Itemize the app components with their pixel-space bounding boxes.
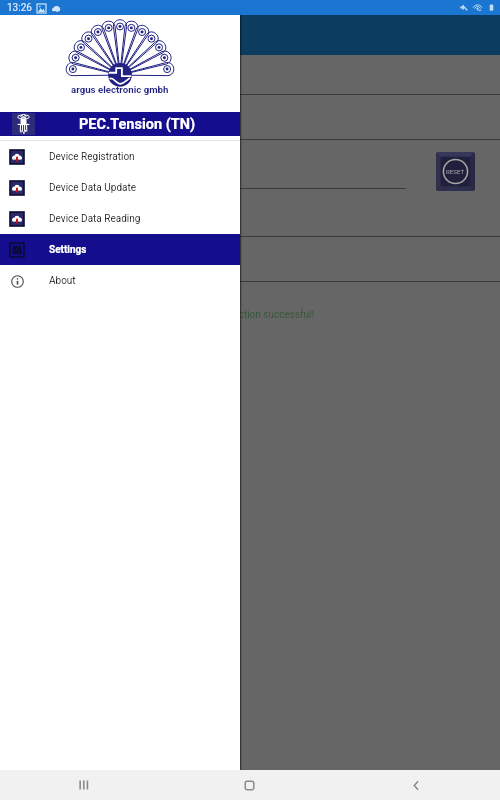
staticText: Settings	[49, 244, 87, 256]
staticText: Device Data Update	[49, 182, 137, 194]
button[interactable]: Reset	[436, 152, 475, 191]
staticText: About	[49, 275, 76, 287]
button[interactable]: Device Data Update	[0, 172, 240, 203]
staticText: RESET	[446, 168, 465, 175]
button[interactable]: Back	[333, 770, 500, 800]
button[interactable]: Recent apps	[0, 770, 166, 800]
button[interactable]: PEC.Tension (TN)	[0, 112, 240, 136]
staticText: 13:26	[7, 2, 32, 14]
staticText: Device Data Reading	[49, 213, 141, 225]
button[interactable]: Device Registration	[0, 141, 240, 172]
button[interactable]: Device Data Reading	[0, 203, 240, 234]
button[interactable]: Settings	[0, 234, 240, 265]
staticText: argus electronic gmbh	[71, 84, 169, 95]
button[interactable]: About	[0, 265, 240, 296]
staticText: Device Registration	[49, 151, 135, 163]
button[interactable]: Home	[166, 770, 333, 800]
staticText: Device data connection successful!	[157, 309, 315, 321]
staticText: PEC.Tension (TN)	[79, 116, 196, 133]
